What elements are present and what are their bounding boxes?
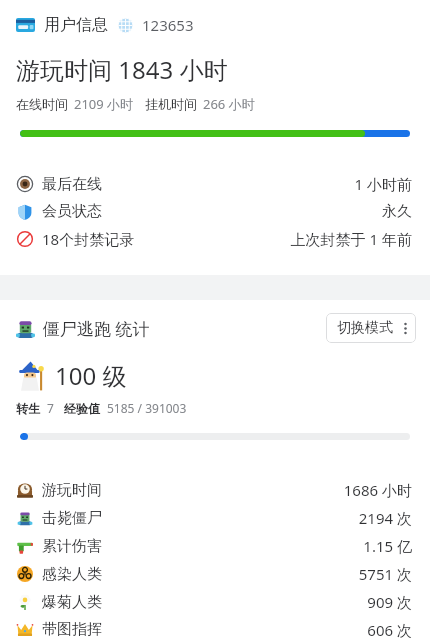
staticText: 1686 小时 (343, 480, 412, 500)
other: User card (16, 18, 35, 32)
other: Zombies killed (17, 510, 33, 526)
other: Playtime (17, 482, 33, 498)
staticText: 在线时间 (16, 96, 68, 112)
staticText: 会员状态 (42, 202, 102, 221)
button[interactable]: Bans (0, 225, 430, 253)
other: Command (17, 621, 33, 637)
staticText: 经验值 (64, 401, 100, 416)
staticText: 909 次 (367, 592, 412, 612)
staticText: 游玩时间 (42, 481, 102, 500)
staticText: 266 小时 (203, 95, 255, 113)
staticText: 爆菊人类 (42, 593, 102, 612)
staticText: 1.15 亿 (363, 536, 412, 556)
staticText: 2109 小时 (74, 95, 134, 113)
staticText: 带图指挥 (42, 620, 102, 638)
staticText: 用户信息 (44, 15, 108, 35)
staticText: 游玩时间 1843 小时 (16, 53, 228, 86)
other: Humans (17, 594, 33, 610)
button[interactable]: Command (0, 616, 430, 642)
staticText: 永久 (382, 202, 412, 221)
staticText: 累计伤害 (42, 537, 102, 556)
button[interactable]: Humans (0, 588, 430, 616)
staticText: 最后在线 (42, 175, 102, 194)
button[interactable]: 切换模式 (326, 313, 416, 343)
button[interactable]: Membership (0, 198, 430, 225)
button[interactable]: Total damage (0, 532, 430, 560)
other: Last online (17, 176, 33, 192)
button[interactable]: Last online (0, 170, 430, 198)
staticText: 5751 次 (358, 564, 412, 584)
button[interactable]: User card (0, 13, 430, 37)
staticText: 606 次 (367, 620, 412, 638)
staticText: 123653 (142, 15, 194, 35)
staticText: 18个封禁记录 (42, 229, 135, 249)
other: Total damage (17, 538, 33, 554)
button[interactable]: Playtime (0, 476, 430, 504)
other: Bans (17, 231, 33, 247)
staticText: 上次封禁于 1 年前 (290, 229, 412, 249)
staticText: 7 (47, 400, 54, 416)
staticText: 切换模式 (337, 319, 393, 337)
staticText: 击毙僵尸 (42, 509, 102, 528)
staticText: 100 级 (55, 359, 127, 392)
staticText: 5185 / 391003 (107, 400, 187, 416)
staticText: 挂机时间 (145, 96, 197, 112)
staticText: 2194 次 (358, 508, 412, 528)
staticText: 僵尸逃跑 统计 (43, 317, 150, 340)
other: Humans infected (17, 566, 33, 582)
other: Region (118, 18, 133, 33)
button[interactable]: Humans infected (0, 560, 430, 588)
other: Membership (17, 204, 33, 220)
staticText: 1 小时前 (354, 174, 412, 194)
staticText: 感染人类 (42, 565, 102, 584)
staticText: 转生 (16, 401, 40, 416)
button[interactable]: Zombies killed (0, 504, 430, 532)
